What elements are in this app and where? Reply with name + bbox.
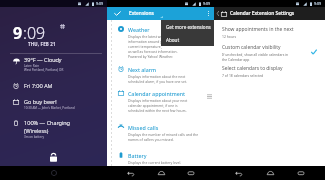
button[interactable]: Extensions (107, 7, 214, 20)
staticText: the Calendar app (222, 57, 250, 62)
staticText: 10:30 AM — John's Market, Portland (24, 106, 75, 110)
staticText: Displays information about your next (128, 98, 188, 103)
staticText: Displays the current battery level. (128, 160, 182, 165)
button[interactable]: Custom calendar visibility (214, 44, 325, 62)
staticText: THU, FEB 21 (28, 41, 56, 47)
button[interactable]: Select calendars to display (214, 65, 325, 78)
staticText: 39°F — Cloudy (24, 56, 62, 64)
button[interactable]: Recent apps (293, 166, 309, 180)
button[interactable]: Missed calls (107, 114, 214, 143)
staticText: Next alarm (128, 66, 157, 73)
staticText: Later: Rain (24, 64, 40, 68)
button[interactable]: Calendar appointment (107, 85, 214, 114)
staticText: Go buy beer! (24, 98, 57, 106)
button[interactable]: 100% — Charging (0, 112, 107, 141)
staticText: as well as forecast information. (128, 49, 178, 54)
button[interactable]: Show appointments in the next (214, 26, 325, 39)
button[interactable]: More options (203, 7, 214, 20)
button[interactable]: Back (122, 166, 138, 180)
staticText: current temperature, (128, 44, 162, 49)
staticText: Extensions (129, 10, 154, 17)
staticText: Custom calendar visibility (222, 44, 281, 51)
staticText: About (166, 37, 180, 43)
staticText: Missed calls (128, 124, 159, 131)
staticText: Get more extensions (166, 24, 211, 30)
staticText: Battery (128, 152, 147, 159)
staticText: information around your (128, 39, 168, 44)
staticText: Powered by Yahoo! Weather. (128, 54, 173, 59)
staticText: 7 of 18 calendars selected (222, 73, 264, 78)
staticText: Fri 7:00 AM (24, 82, 53, 90)
staticText: 9:09 (203, 1, 211, 6)
staticText: Select calendars to display (222, 65, 283, 72)
staticText: Calendar Extension Settings (230, 10, 295, 17)
button[interactable]: Get more extensions (161, 20, 215, 33)
staticText: Displays the latest weather (128, 34, 171, 39)
staticText: If unchecked, show all visible calendars… (222, 52, 289, 57)
button[interactable]: Go buy beer! (0, 92, 107, 112)
staticText: 9:09 (314, 1, 322, 6)
staticText: 12 hours (222, 34, 237, 39)
button[interactable]: Unlock (49, 168, 59, 178)
staticText: scheduled within the next few hours. (128, 108, 187, 113)
staticText: Show appointments in the next (222, 26, 294, 33)
button[interactable]: Next alarm (107, 60, 214, 85)
staticText: 3m on battery (24, 135, 44, 139)
staticText: Displays the number of missed calls and … (128, 132, 199, 137)
staticText: Calendar appointment (128, 90, 186, 97)
staticText: Displays information about the next (128, 74, 186, 79)
button[interactable]: Recent apps (183, 166, 199, 180)
button[interactable]: Home (153, 166, 169, 180)
staticText: 100% — Charging (24, 119, 70, 127)
button[interactable]: Battery (107, 143, 214, 166)
staticText: 9:09 (96, 1, 104, 6)
button[interactable]: Fri 7:00 AM (0, 74, 107, 92)
staticText: calendar appointment, if one is (128, 103, 178, 108)
button[interactable]: Home (262, 166, 278, 180)
button[interactable]: About (161, 33, 215, 46)
button[interactable]: Calendar Extension Settings (214, 7, 325, 20)
button[interactable]: Back (230, 166, 246, 180)
staticText: :09 (23, 22, 46, 44)
button[interactable]: Weather (107, 20, 214, 60)
staticText: names of callers you missed. (128, 137, 174, 142)
staticText: West Portland, Portland, OR (24, 68, 64, 72)
staticText: (Wireless) (24, 127, 49, 135)
button[interactable]: 39°F — Cloudy (0, 54, 107, 74)
staticText: Weather (128, 26, 150, 33)
staticText: scheduled alarm, if you have one set. (128, 79, 188, 84)
staticText: 9 (13, 22, 23, 44)
